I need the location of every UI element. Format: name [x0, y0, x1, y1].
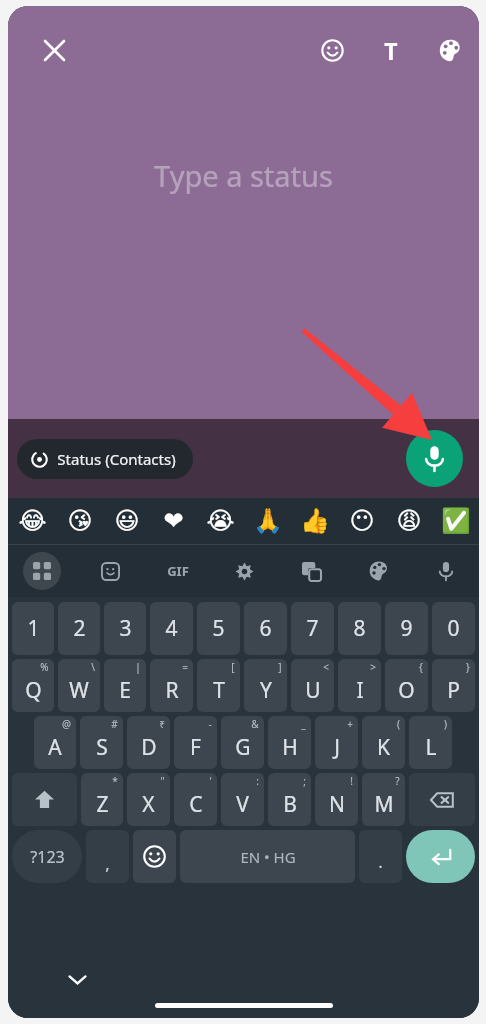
button[interactable]: Settings: [211, 545, 278, 597]
button[interactable]: 😭: [197, 498, 244, 544]
button[interactable]: .: [359, 830, 402, 883]
staticText: =: [182, 660, 188, 674]
button[interactable]: [: [197, 659, 240, 712]
staticText: Status (Contacts): [57, 449, 176, 469]
button[interactable]: ?: [362, 773, 405, 826]
staticText: @: [62, 717, 71, 731]
button[interactable]: Keyboard modes: [8, 545, 76, 597]
staticText: 😩: [396, 507, 422, 535]
button[interactable]: {: [385, 659, 428, 712]
staticText: EN • HG: [240, 847, 296, 867]
button[interactable]: Shift: [12, 773, 77, 826]
button[interactable]: 3: [104, 602, 146, 655]
staticText: ': [209, 774, 212, 788]
button[interactable]: 😩: [385, 498, 432, 544]
button[interactable]: Emoji keyboard: [133, 830, 176, 883]
button[interactable]: Close: [30, 26, 78, 74]
staticText: <: [323, 660, 329, 674]
button[interactable]: Color palette: [426, 26, 474, 74]
button[interactable]: 😘: [56, 498, 103, 544]
button[interactable]: 😃: [103, 498, 150, 544]
button[interactable]: <: [291, 659, 334, 712]
button[interactable]: \: [58, 659, 100, 712]
staticText: D: [141, 733, 157, 762]
staticText: GIF: [167, 562, 189, 580]
button[interactable]: Hide keyboard: [56, 958, 98, 1000]
button[interactable]: ✅: [432, 498, 479, 544]
staticText: H: [282, 733, 298, 762]
button[interactable]: 👍: [291, 498, 338, 544]
button[interactable]: !: [315, 773, 358, 826]
button[interactable]: Translate: [278, 545, 345, 597]
staticText: G: [235, 733, 251, 762]
button[interactable]: *: [81, 773, 123, 826]
button[interactable]: @: [34, 716, 76, 769]
button[interactable]: _: [268, 716, 311, 769]
button[interactable]: ": [127, 773, 170, 826]
staticText: F: [190, 733, 201, 762]
button[interactable]: &: [221, 716, 264, 769]
button[interactable]: #: [80, 716, 123, 769]
staticText: |: [135, 660, 141, 674]
button[interactable]: Text style: [367, 26, 415, 74]
staticText: :: [256, 774, 259, 788]
button[interactable]: -: [174, 716, 217, 769]
staticText: I: [356, 676, 364, 705]
button[interactable]: GIF: [144, 545, 211, 597]
staticText: ]: [278, 660, 282, 674]
staticText: %: [40, 660, 49, 674]
button[interactable]: ,: [86, 830, 129, 883]
button[interactable]: Emoji: [308, 26, 356, 74]
button[interactable]: Backspace: [409, 773, 475, 826]
button[interactable]: +: [315, 716, 358, 769]
button[interactable]: Themes: [345, 545, 412, 597]
staticText: Type a status: [154, 156, 333, 195]
button[interactable]: EN • HG: [180, 830, 355, 883]
button[interactable]: 1: [12, 602, 54, 655]
button[interactable]: 😶: [338, 498, 385, 544]
staticText: O: [398, 676, 415, 705]
button[interactable]: 🙏: [244, 498, 291, 544]
button[interactable]: :: [221, 773, 264, 826]
button[interactable]: 9: [385, 602, 428, 655]
staticText: 3: [119, 614, 132, 643]
button[interactable]: 5: [197, 602, 240, 655]
button[interactable]: ;: [268, 773, 311, 826]
button[interactable]: Record voice status: [406, 430, 463, 487]
button[interactable]: ?123: [12, 830, 82, 883]
button[interactable]: =: [150, 659, 193, 712]
button[interactable]: ₹: [127, 716, 170, 769]
button[interactable]: %: [12, 659, 54, 712]
staticText: J: [334, 733, 340, 762]
button[interactable]: ❤️: [150, 498, 197, 544]
button[interactable]: Stickers: [76, 545, 144, 597]
staticText: (: [397, 717, 400, 731]
button[interactable]: (: [362, 716, 405, 769]
button[interactable]: Enter: [406, 830, 475, 883]
button[interactable]: 8: [338, 602, 381, 655]
button[interactable]: 7: [291, 602, 334, 655]
staticText: Z: [96, 790, 109, 819]
button[interactable]: 4: [150, 602, 193, 655]
button[interactable]: |: [104, 659, 146, 712]
staticText: A: [48, 733, 62, 762]
button[interactable]: >: [338, 659, 381, 712]
staticText: L: [425, 733, 437, 762]
button[interactable]: 6: [244, 602, 287, 655]
button[interactable]: ': [174, 773, 217, 826]
staticText: 😘: [67, 507, 93, 535]
staticText: ,: [105, 852, 110, 875]
button[interactable]: 2: [58, 602, 100, 655]
staticText: Q: [25, 676, 42, 705]
button[interactable]: 0: [432, 602, 475, 655]
button[interactable]: Status (Contacts): [17, 439, 193, 479]
staticText: S: [96, 733, 108, 762]
button[interactable]: }: [432, 659, 475, 712]
button[interactable]: ]: [244, 659, 287, 712]
button[interactable]: 😂: [8, 498, 56, 544]
button[interactable]: Voice input: [412, 545, 479, 597]
staticText: 👍: [300, 507, 330, 535]
staticText: V: [236, 790, 249, 819]
button[interactable]: ): [409, 716, 452, 769]
staticText: 🙏: [253, 507, 283, 535]
